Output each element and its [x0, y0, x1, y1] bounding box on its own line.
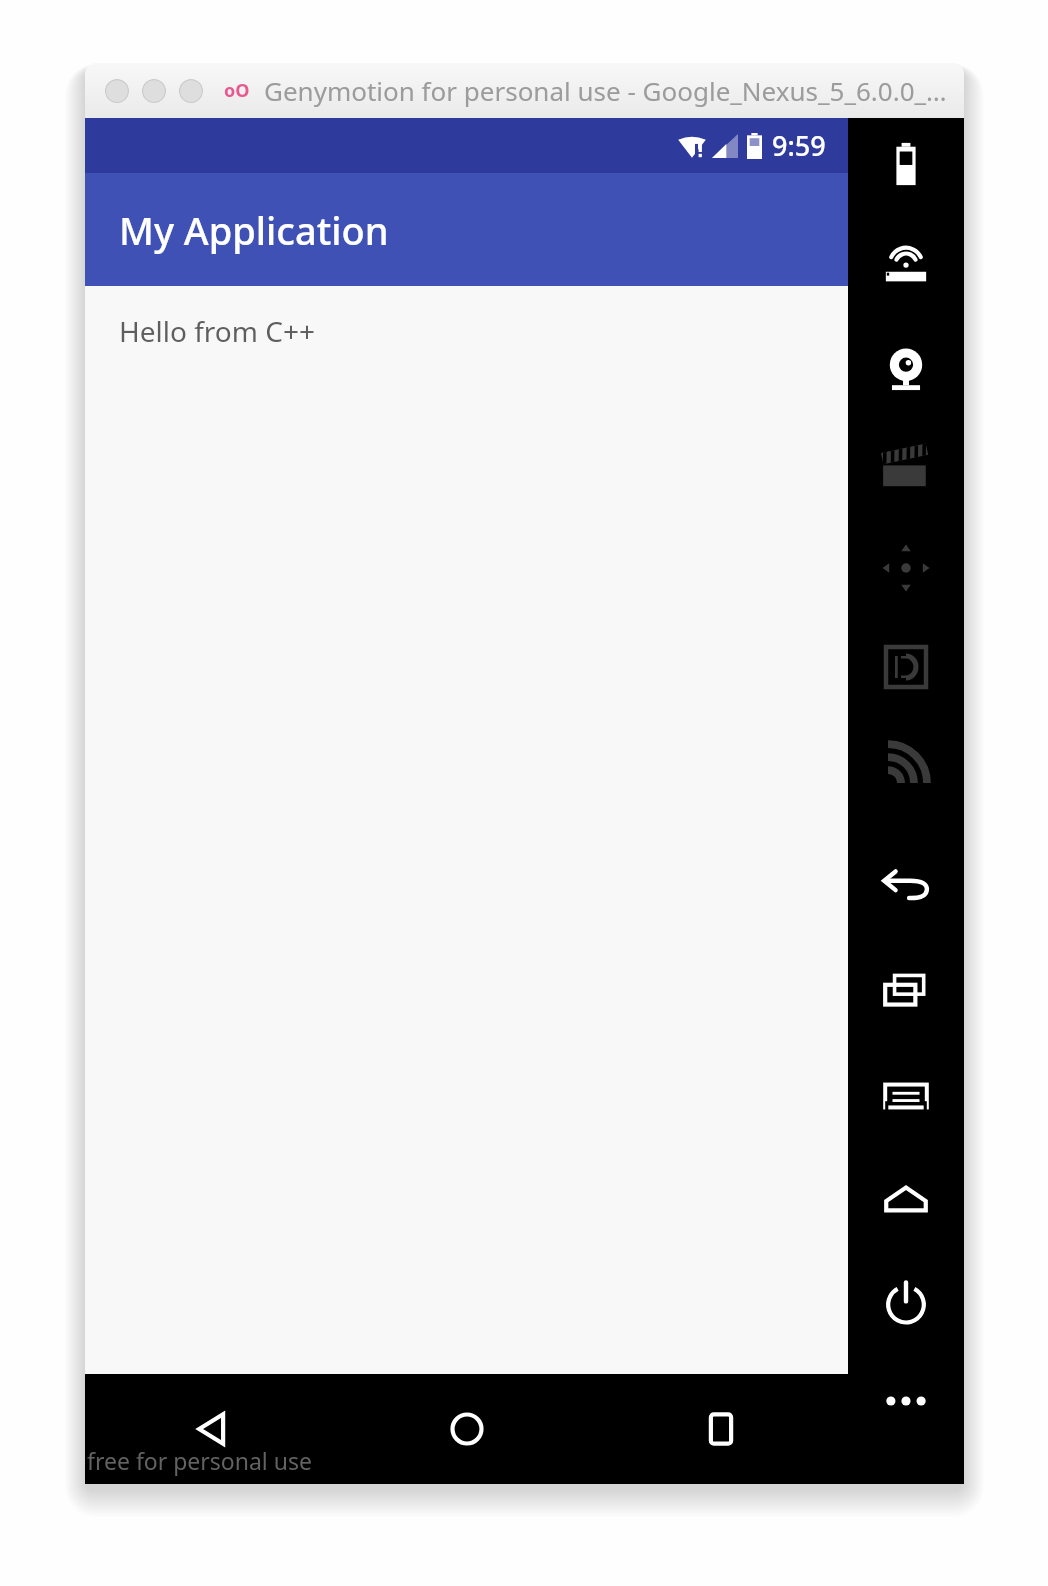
staticText: Hello from C++: [119, 312, 315, 350]
button[interactable]: Back: [85, 1374, 340, 1484]
button[interactable]: Battery: [867, 140, 945, 188]
button[interactable]: Home: [867, 1174, 945, 1226]
button[interactable]: Power: [867, 1276, 945, 1330]
button[interactable]: Screen record: [867, 442, 945, 494]
button[interactable]: Window button: [105, 79, 129, 103]
button[interactable]: Recent apps: [867, 964, 945, 1016]
button[interactable]: Window button: [179, 79, 203, 103]
staticText: 9:59: [772, 127, 826, 164]
button[interactable]: Back: [867, 860, 945, 912]
button[interactable]: Menu: [867, 1070, 945, 1122]
button[interactable]: Navigation: [867, 540, 945, 596]
button[interactable]: Camera: [867, 342, 945, 396]
button[interactable]: Window button: [142, 79, 166, 103]
button[interactable]: GPS: [867, 242, 945, 290]
button[interactable]: Identifiers: [867, 642, 945, 692]
staticText: Genymotion for personal use - Google_Nex…: [264, 73, 947, 108]
staticText: free for personal use: [87, 1445, 312, 1476]
button[interactable]: Home: [340, 1374, 594, 1484]
staticText: My Application: [119, 204, 389, 256]
button[interactable]: More: [867, 1374, 945, 1428]
button[interactable]: Network: [867, 740, 945, 790]
button[interactable]: Recent apps: [594, 1374, 848, 1484]
staticText: oO: [224, 78, 250, 103]
